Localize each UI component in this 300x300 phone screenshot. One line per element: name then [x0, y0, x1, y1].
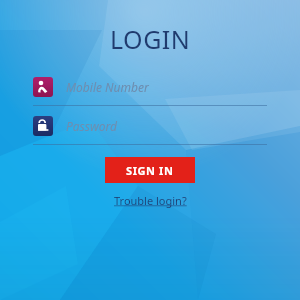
button[interactable]: Trouble login?: [114, 193, 187, 208]
staticText: LOGIN: [110, 22, 191, 56]
staticText: Password: [66, 118, 117, 134]
button[interactable]: Password: [33, 112, 267, 145]
button[interactable]: SIGN IN: [105, 157, 195, 183]
staticText: SIGN IN: [126, 163, 174, 178]
staticText: Trouble login?: [114, 193, 187, 208]
button[interactable]: Mobile Number: [33, 73, 267, 106]
staticText: Mobile Number: [66, 79, 149, 95]
